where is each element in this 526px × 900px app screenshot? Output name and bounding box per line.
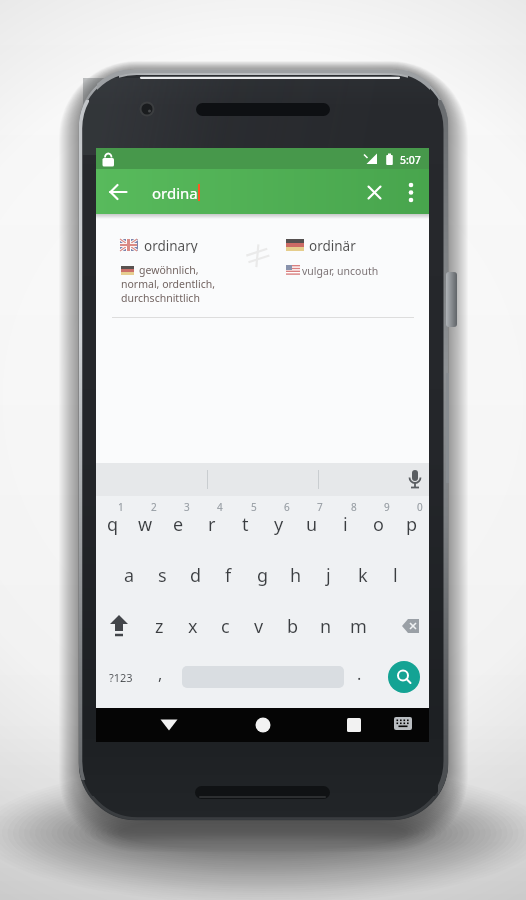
button[interactable]: , (150, 655, 170, 693)
staticText: 6 (284, 500, 290, 513)
button[interactable]: s (146, 556, 179, 594)
button[interactable] (104, 178, 132, 206)
button[interactable]: z (143, 607, 176, 645)
button[interactable]: 2 (129, 499, 163, 546)
staticText: p (406, 512, 418, 537)
staticText: a (124, 563, 135, 588)
staticText: 7 (317, 500, 323, 513)
button[interactable]: 8 (329, 499, 363, 546)
staticText: v (254, 614, 264, 639)
button[interactable]: n (309, 607, 342, 645)
button[interactable]: h (279, 556, 312, 594)
button[interactable]: j (312, 556, 345, 594)
button[interactable]: 1 (96, 499, 130, 546)
staticText: 5 (251, 500, 257, 513)
button[interactable]: f (212, 556, 245, 594)
staticText: ordinär (309, 237, 356, 253)
staticText: 5:07 (400, 153, 421, 165)
staticText: k (358, 563, 368, 588)
staticText: g (257, 563, 269, 588)
button[interactable]: v (242, 607, 275, 645)
button[interactable] (399, 179, 423, 206)
staticText: 1 (118, 500, 124, 513)
button[interactable]: 9 (362, 499, 396, 546)
button[interactable]: d (179, 556, 212, 594)
button[interactable] (446, 272, 457, 327)
staticText: w (138, 512, 153, 537)
button[interactable] (403, 466, 427, 493)
button[interactable] (390, 710, 416, 738)
staticText: q (107, 512, 119, 537)
staticText: 9 (384, 500, 390, 513)
staticText: . (357, 663, 362, 685)
button[interactable] (361, 179, 388, 206)
staticText: u (306, 512, 318, 537)
button[interactable]: 5 (229, 499, 263, 546)
button[interactable] (249, 710, 277, 740)
staticText: i (343, 512, 348, 537)
button[interactable]: b (276, 607, 309, 645)
button[interactable]: x (176, 607, 209, 645)
staticText: gewöhnlich, (139, 263, 199, 277)
button[interactable]: c (209, 607, 242, 645)
staticText: f (225, 563, 232, 588)
button[interactable]: 3 (162, 499, 196, 546)
staticText: durchschnittlich (121, 291, 200, 305)
staticText: 4 (217, 500, 223, 513)
staticText: x (188, 614, 198, 639)
staticText: m (350, 614, 367, 639)
button[interactable]: 4 (195, 499, 229, 546)
staticText: ordina (152, 183, 198, 203)
staticText: , (158, 663, 163, 685)
staticText: vulgar, uncouth (302, 264, 379, 278)
staticText: d (190, 563, 202, 588)
button[interactable]: ?123 (105, 658, 137, 696)
staticText: 3 (184, 500, 190, 513)
button[interactable] (388, 661, 420, 693)
staticText: e (173, 512, 184, 537)
staticText: normal, ordentlich, (121, 277, 216, 291)
staticText: r (208, 512, 216, 537)
button[interactable]: m (342, 607, 375, 645)
staticText: h (290, 563, 302, 588)
button[interactable] (340, 710, 368, 740)
button[interactable]: 6 (262, 499, 296, 546)
staticText: 0 (417, 500, 423, 513)
staticText: b (287, 614, 299, 639)
staticText: z (155, 614, 164, 639)
button[interactable] (155, 710, 183, 740)
staticText: t (242, 512, 249, 537)
button[interactable]: . (349, 655, 369, 693)
button[interactable]: 0 (395, 499, 429, 546)
staticText: n (320, 614, 332, 639)
staticText: ordinary (144, 237, 198, 253)
staticText: ?123 (109, 670, 133, 685)
button[interactable]: k (346, 556, 379, 594)
staticText: 8 (351, 500, 357, 513)
button[interactable] (392, 607, 424, 645)
button[interactable]: ordinary (144, 237, 214, 253)
button[interactable]: a (113, 556, 146, 594)
staticText: o (373, 512, 384, 537)
staticText: c (221, 614, 230, 639)
staticText: l (393, 563, 398, 588)
staticText: 2 (151, 500, 157, 513)
button[interactable] (103, 607, 135, 645)
staticText: y (274, 512, 284, 537)
button[interactable]: l (379, 556, 412, 594)
button[interactable]: 7 (295, 499, 329, 546)
button[interactable]: ordinär (309, 237, 374, 253)
button[interactable]: g (246, 556, 279, 594)
staticText: s (158, 563, 167, 588)
staticText: j (326, 563, 331, 588)
